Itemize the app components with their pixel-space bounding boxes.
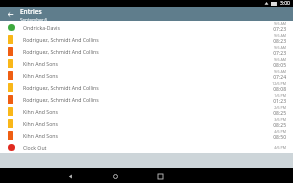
staticText: Ondricka-Davis (23, 24, 273, 31)
button[interactable]: Kihn And Sons (0, 129, 293, 141)
staticText: Rodriguez, Schmidt And Collins (23, 84, 272, 91)
staticText: Kihn And Sons (23, 120, 273, 127)
staticText: Rodriguez, Schmidt And Collins (23, 96, 273, 103)
staticText: Kihn And Sons (23, 60, 273, 67)
staticText: 2/6 PM (274, 105, 286, 110)
button[interactable]: Back (63, 169, 77, 183)
staticText: 9/6 AM (274, 33, 286, 38)
staticText: 08:05 (273, 62, 286, 69)
staticText: September 6 (20, 17, 48, 21)
staticText: 9/6 AM (274, 57, 286, 62)
button[interactable]: Back (0, 7, 20, 21)
button[interactable]: Kihn And Sons (0, 117, 293, 129)
staticText: 9/6 AM (274, 69, 286, 74)
button[interactable]: Rodriguez, Schmidt And Collins (0, 33, 293, 45)
button[interactable]: Home (108, 169, 122, 183)
staticText: 08:50 (273, 134, 286, 141)
staticText: 08:23 (273, 38, 286, 45)
staticText: 12/6 PM (272, 81, 286, 86)
staticText: 1/6 PM (274, 93, 286, 98)
button[interactable]: Rodriguez, Schmidt And Collins (0, 93, 293, 105)
staticText: Kihn And Sons (23, 132, 273, 139)
button[interactable]: Recents (153, 169, 167, 183)
staticText: 08:25 (273, 110, 286, 117)
button[interactable]: Clock Out (0, 141, 293, 153)
staticText: 07:23 (273, 26, 286, 33)
staticText: Rodriguez, Schmidt And Collins (23, 36, 273, 43)
staticText: 01:23 (273, 98, 286, 105)
button[interactable]: Rodriguez, Schmidt And Collins (0, 81, 293, 93)
staticText: Entries (20, 7, 42, 16)
button[interactable]: Kihn And Sons (0, 69, 293, 81)
staticText: 3:00 (280, 0, 290, 7)
staticText: 3/6 PM (274, 117, 286, 122)
button[interactable]: Ondricka-Davis (0, 21, 293, 33)
staticText: 08:25 (273, 122, 286, 129)
button[interactable]: Kihn And Sons (0, 105, 293, 117)
staticText: Clock Out (23, 144, 274, 151)
staticText: Kihn And Sons (23, 108, 273, 115)
button[interactable]: Kihn And Sons (0, 57, 293, 69)
button[interactable]: Rodriguez, Schmidt And Collins (0, 45, 293, 57)
staticText: 9/6 AM (274, 21, 286, 26)
staticText: 07:23 (273, 50, 286, 57)
staticText: 9/6 AM (274, 45, 286, 50)
staticText: Kihn And Sons (23, 72, 273, 79)
staticText: 07:24 (273, 74, 286, 81)
staticText: 4/6 PM (274, 129, 286, 134)
staticText: 08:08 (273, 86, 286, 93)
staticText: 4/6 PM (274, 145, 286, 150)
staticText: Rodriguez, Schmidt And Collins (23, 48, 273, 55)
